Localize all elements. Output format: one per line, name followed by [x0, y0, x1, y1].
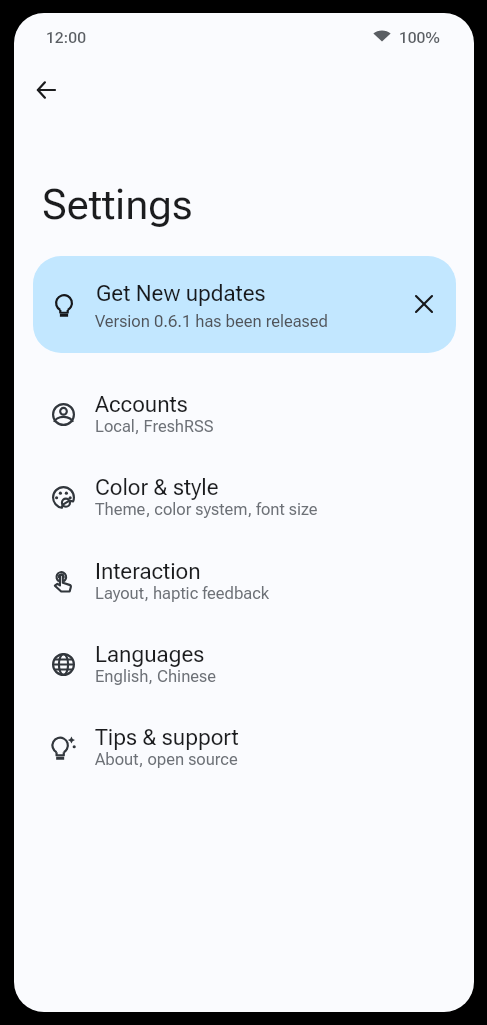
staticText: Interaction — [95, 558, 201, 584]
staticText: Get New updates — [96, 280, 266, 306]
staticText: Languages — [95, 641, 205, 667]
staticText: Accounts — [95, 391, 188, 417]
staticText: English, Chinese — [95, 667, 216, 686]
button[interactable]: Get New updates — [33, 256, 456, 353]
staticText: About, open source — [95, 750, 238, 769]
button[interactable]: Back — [22, 66, 70, 114]
staticText: Local, FreshRSS — [95, 417, 214, 436]
staticText: Version 0.6.1 has been released — [95, 312, 328, 331]
staticText: Theme, color system, font size — [95, 500, 318, 519]
button[interactable]: Interaction — [14, 545, 474, 613]
staticText: 100% — [399, 29, 440, 47]
staticText: Settings — [42, 180, 193, 229]
button[interactable]: Accounts — [14, 378, 474, 446]
staticText: 12:00 — [46, 29, 86, 47]
staticText: Tips & support — [95, 724, 239, 750]
staticText: Color & style — [95, 474, 219, 500]
button[interactable]: Dismiss — [401, 281, 447, 327]
button[interactable]: Languages — [14, 628, 474, 696]
button[interactable]: Color & style — [14, 461, 474, 529]
button[interactable]: Tips & support — [14, 711, 474, 779]
staticText: Layout, haptic feedback — [95, 584, 270, 603]
